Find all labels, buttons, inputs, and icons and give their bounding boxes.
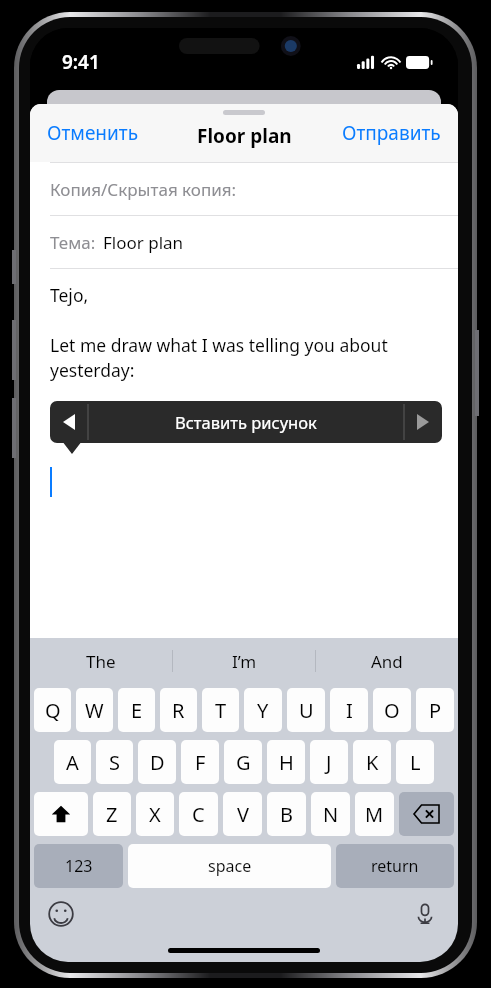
- staticText: D: [150, 749, 165, 776]
- staticText: F: [195, 749, 206, 776]
- button[interactable]: Emoji keyboard: [44, 897, 78, 931]
- staticText: I: [346, 697, 353, 724]
- button[interactable]: Y: [244, 688, 282, 732]
- button[interactable]: D: [138, 740, 176, 784]
- staticText: Q: [45, 697, 61, 724]
- staticText: O: [384, 697, 400, 724]
- button[interactable]: P: [416, 688, 454, 732]
- button[interactable]: S: [96, 740, 133, 784]
- staticText: E: [131, 697, 143, 724]
- staticText: T: [215, 697, 227, 724]
- staticText: I’m: [232, 650, 257, 673]
- button[interactable]: 123: [34, 844, 123, 888]
- button[interactable]: V: [223, 792, 262, 836]
- staticText: L: [410, 749, 421, 776]
- staticText: Отменить: [47, 120, 139, 146]
- staticText: The: [86, 650, 116, 673]
- button[interactable]: T: [202, 688, 239, 732]
- button[interactable]: J: [310, 740, 348, 784]
- button[interactable]: Q: [34, 688, 71, 732]
- button[interactable]: Отправить: [336, 114, 447, 152]
- staticText: Копия/Скрытая копия:: [50, 178, 237, 201]
- button[interactable]: K: [353, 740, 391, 784]
- staticText: V: [237, 801, 249, 828]
- button[interactable]: U: [287, 688, 325, 732]
- staticText: G: [236, 749, 251, 776]
- staticText: 9:41: [62, 49, 100, 75]
- button[interactable]: M: [355, 792, 394, 836]
- staticText: return: [371, 855, 419, 877]
- button[interactable]: O: [373, 688, 411, 732]
- button[interactable]: Dictation: [408, 897, 442, 931]
- button[interactable]: And: [316, 638, 458, 684]
- button[interactable]: X: [136, 792, 174, 836]
- staticText: Tejo,: [50, 283, 89, 307]
- button[interactable]: Копия/Скрытая копия:: [30, 163, 458, 215]
- staticText: Y: [257, 697, 269, 724]
- staticText: J: [326, 749, 332, 776]
- staticText: And: [371, 650, 403, 673]
- button[interactable]: G: [224, 740, 262, 784]
- staticText: Let me draw what I was telling you about…: [50, 333, 388, 383]
- staticText: S: [109, 749, 120, 776]
- staticText: A: [66, 749, 79, 776]
- staticText: K: [366, 749, 379, 776]
- button[interactable]: C: [179, 792, 218, 836]
- staticText: U: [299, 697, 314, 724]
- button[interactable]: Shift: [34, 792, 88, 836]
- button[interactable]: The: [30, 638, 172, 684]
- button[interactable]: H: [267, 740, 305, 784]
- staticText: C: [192, 801, 205, 828]
- button[interactable]: I’m: [173, 638, 315, 684]
- button[interactable]: Тема:: [30, 216, 458, 268]
- button[interactable]: A: [54, 740, 91, 784]
- button[interactable]: I: [330, 688, 368, 732]
- staticText: N: [323, 801, 339, 828]
- staticText: M: [365, 801, 384, 828]
- button[interactable]: Backspace: [399, 792, 454, 836]
- button[interactable]: L: [396, 740, 434, 784]
- button[interactable]: return: [336, 844, 454, 888]
- staticText: Тема:: [50, 231, 96, 254]
- staticText: space: [208, 855, 252, 877]
- staticText: W: [85, 697, 104, 724]
- staticText: 123: [65, 855, 93, 877]
- staticText: H: [279, 749, 294, 776]
- staticText: X: [149, 801, 161, 828]
- staticText: R: [172, 697, 185, 724]
- button[interactable]: space: [128, 844, 331, 888]
- staticText: Floor plan: [197, 123, 292, 149]
- button[interactable]: Вставить рисунок: [50, 401, 442, 443]
- staticText: Z: [106, 801, 118, 828]
- staticText: B: [280, 801, 293, 828]
- staticText: P: [429, 697, 442, 724]
- button[interactable]: B: [267, 792, 306, 836]
- button[interactable]: N: [311, 792, 350, 836]
- button[interactable]: F: [181, 740, 219, 784]
- staticText: Floor plan: [103, 231, 184, 254]
- button[interactable]: Отменить: [41, 114, 145, 152]
- button[interactable]: R: [160, 688, 197, 732]
- staticText: Отправить: [342, 120, 441, 146]
- staticText: Вставить рисунок: [175, 411, 317, 433]
- button[interactable]: W: [76, 688, 113, 732]
- button[interactable]: Z: [93, 792, 131, 836]
- button[interactable]: E: [118, 688, 155, 732]
